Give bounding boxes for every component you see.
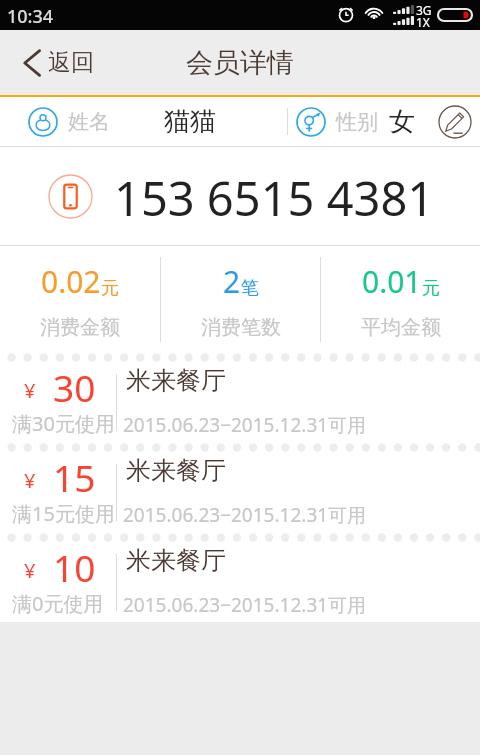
staticText: 153 6515 4381 (114, 166, 435, 230)
staticText: 性别 (336, 109, 378, 135)
staticText: 姓名 (68, 109, 110, 135)
button[interactable]: ¥ (0, 452, 480, 533)
staticText: 元 (422, 277, 440, 300)
button[interactable]: 0.02 (0, 260, 160, 340)
staticText: 米来餐厅 (126, 455, 226, 486)
staticText: 10:34 (7, 4, 54, 29)
button[interactable]: ¥ (0, 542, 480, 622)
staticText: 2015.06.23−2015.12.31可用 (123, 502, 367, 528)
staticText: ¥ (24, 467, 36, 494)
staticText: 3G (416, 2, 432, 18)
button[interactable]: ¥ (0, 362, 480, 443)
staticText: 满0元使用 (12, 590, 104, 617)
staticText: 满15元使用 (12, 500, 115, 527)
staticText: 女 (389, 105, 415, 138)
staticText: 米来餐厅 (126, 365, 226, 396)
staticText: 10 (53, 542, 96, 592)
staticText: 30 (53, 362, 96, 412)
button[interactable]: Edit member (434, 101, 476, 143)
staticText: 1X (416, 14, 430, 30)
staticText: 消费笔数 (201, 315, 281, 340)
button[interactable]: 返回 (0, 38, 108, 87)
staticText: 2015.06.23−2015.12.31可用 (123, 412, 367, 438)
staticText: 猫猫 (164, 105, 216, 138)
staticText: 平均金额 (361, 315, 441, 340)
staticText: ¥ (24, 557, 36, 584)
staticText: 会员详情 (186, 46, 294, 80)
staticText: 0.01 (362, 261, 422, 302)
button[interactable]: 0.01 (321, 260, 480, 340)
staticText: 0.02 (41, 261, 101, 302)
staticText: 15 (53, 452, 96, 502)
button[interactable]: 2 (161, 260, 320, 340)
staticText: 满30元使用 (12, 410, 115, 437)
staticText: 米来餐厅 (126, 545, 226, 576)
button[interactable]: 153 6515 4381 (0, 147, 480, 245)
staticText: 返回 (48, 48, 94, 77)
staticText: ¥ (24, 377, 36, 404)
staticText: 2015.06.23−2015.12.31可用 (123, 592, 367, 618)
staticText: 笔 (241, 277, 259, 300)
staticText: 元 (101, 277, 119, 300)
staticText: 消费金额 (40, 315, 120, 340)
staticText: 2 (223, 261, 241, 302)
